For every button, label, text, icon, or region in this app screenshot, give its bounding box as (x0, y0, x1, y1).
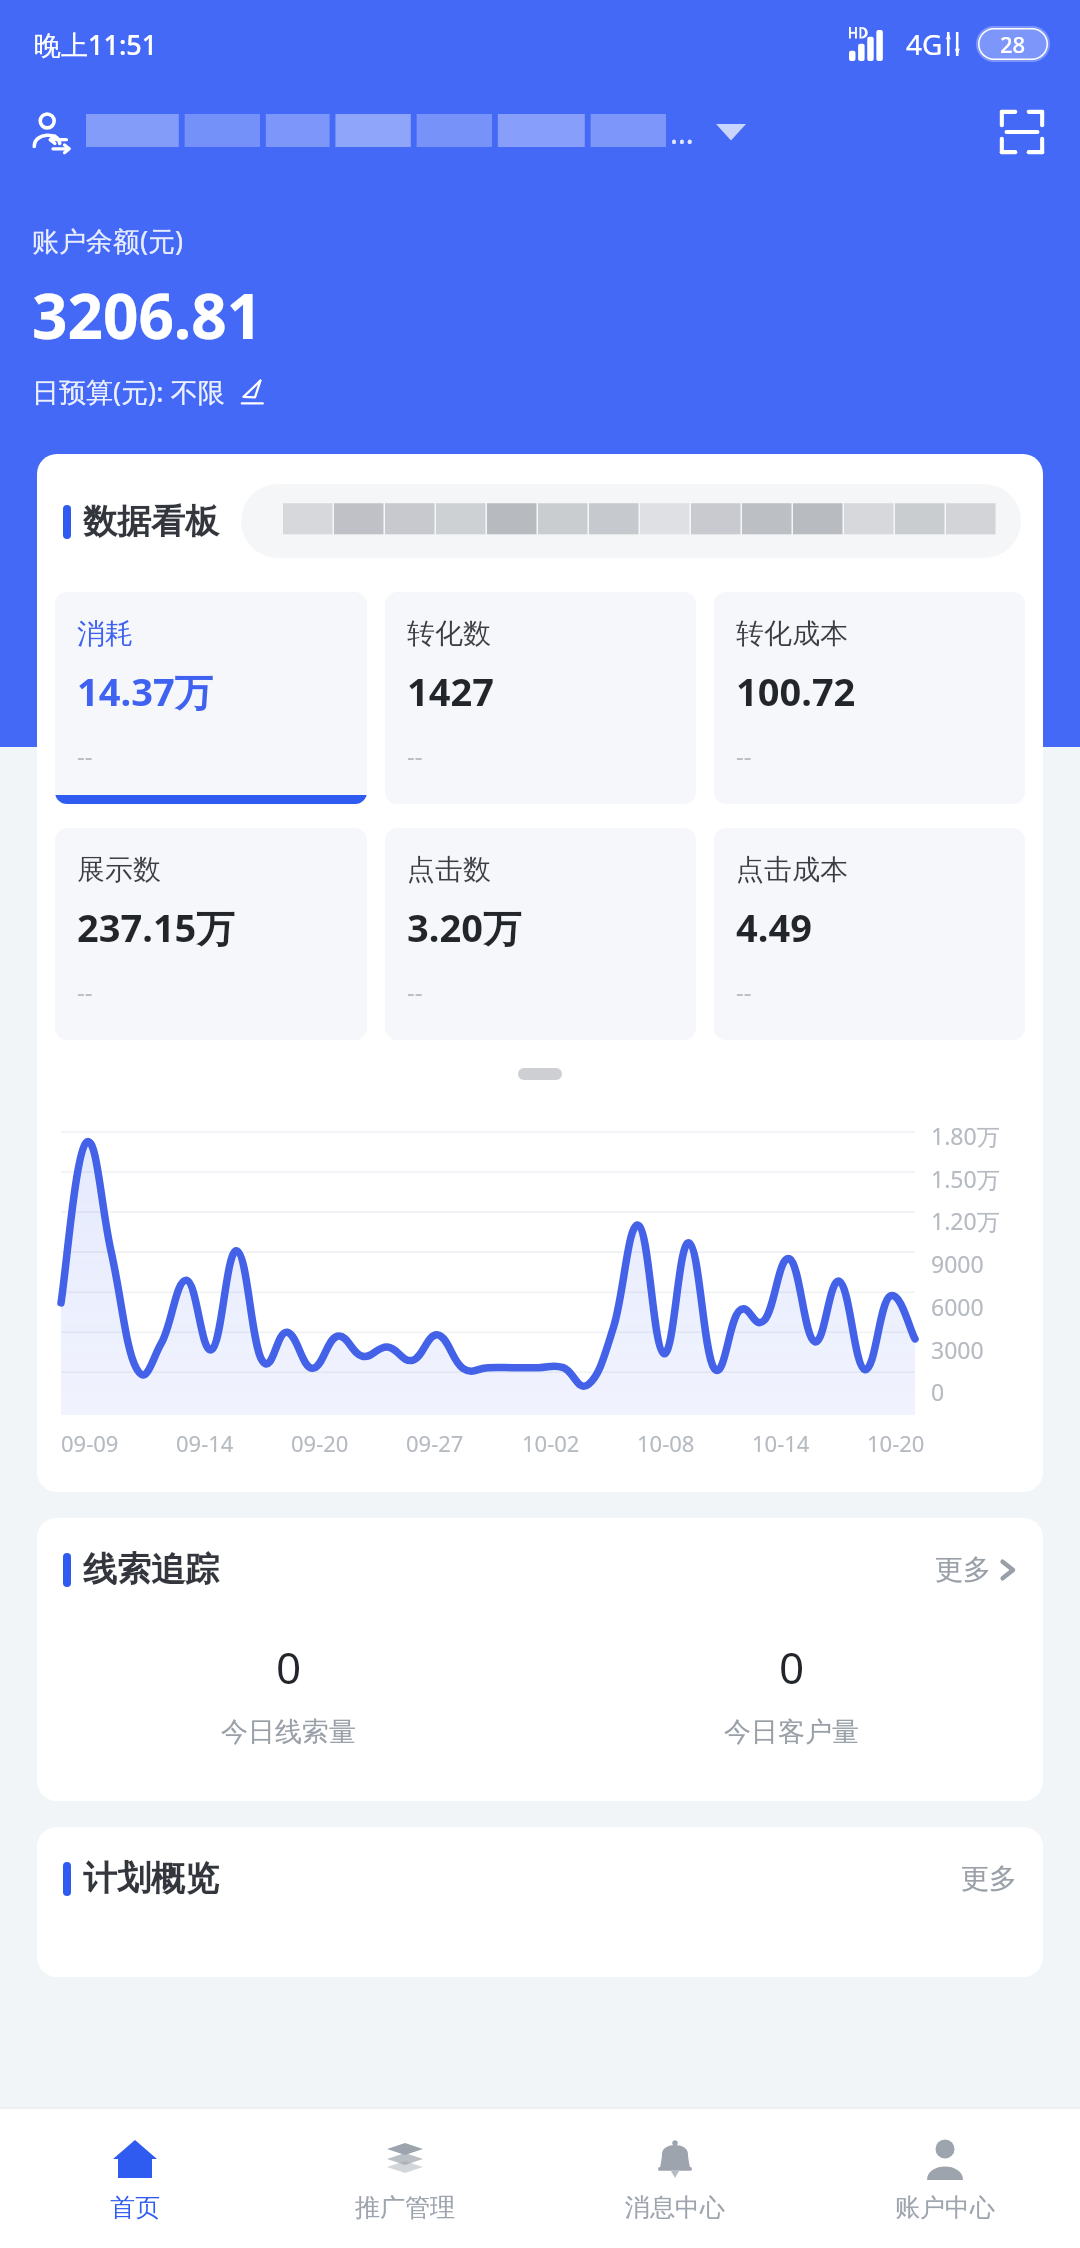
staticText: 更多 (961, 1861, 1017, 1896)
staticText: 日预算(元): 不限 (32, 373, 225, 410)
button[interactable]: 日预算(元): 不限 (32, 373, 267, 410)
staticText: 10-08 (637, 1428, 695, 1458)
staticText: 首页 (110, 2192, 160, 2223)
staticText: 09-09 (61, 1428, 119, 1458)
staticText: 100.72 (736, 665, 856, 717)
button[interactable]: 点击成本 (714, 828, 1025, 1040)
button[interactable]: 账户中心 (810, 2108, 1080, 2248)
staticText: 账户中心 (895, 2192, 995, 2223)
staticText: 4G (906, 25, 943, 63)
staticText: 晚上11:51 (34, 26, 158, 63)
button[interactable]: 转化成本 (714, 592, 1025, 804)
staticText: 1.80万 (931, 1120, 1000, 1151)
staticText: 展示数 (77, 852, 161, 887)
staticText: 今日线索量 (221, 1715, 356, 1749)
button[interactable]: 消息中心 (540, 2108, 810, 2248)
staticText: 账户余额(元) (32, 222, 184, 259)
staticText: 09-14 (176, 1428, 234, 1458)
staticText: 1.20万 (931, 1205, 1000, 1236)
button[interactable]: 转化数 (385, 592, 696, 804)
staticText: 28 (1000, 29, 1026, 59)
staticText: 线索追踪 (83, 1548, 219, 1591)
staticText: 9000 (931, 1248, 984, 1279)
staticText: 4.49 (736, 901, 812, 953)
staticText: 10-02 (522, 1428, 580, 1458)
staticText: 09-27 (406, 1428, 464, 1458)
staticText: 3000 (931, 1334, 984, 1365)
button[interactable]: 推广管理 (270, 2108, 540, 2248)
button[interactable]: 0 (37, 1637, 540, 1749)
staticText: 6000 (931, 1291, 984, 1322)
button[interactable]: 0 (540, 1637, 1043, 1749)
staticText: -- (407, 739, 423, 772)
staticText: 数据看板 (83, 500, 219, 543)
staticText: 0 (276, 1637, 302, 1697)
button[interactable]: 筛选条件 (241, 484, 1021, 558)
staticText: 点击成本 (736, 852, 848, 887)
staticText: 推广管理 (355, 2192, 455, 2223)
button[interactable]: 计划概览 (37, 1827, 1043, 1977)
button[interactable]: 消耗 (55, 592, 367, 804)
staticText: 计划概览 (83, 1857, 219, 1900)
other: 切换账户 (28, 108, 76, 156)
staticText: -- (736, 739, 752, 772)
button[interactable]: 扫一扫 (992, 102, 1052, 162)
staticText: 更多 (935, 1552, 991, 1587)
staticText: 10-20 (867, 1428, 925, 1458)
staticText: 10-14 (752, 1428, 810, 1458)
staticText: 点击数 (407, 852, 491, 887)
staticText: 1.50万 (931, 1163, 1000, 1194)
staticText: … (670, 112, 694, 153)
staticText: 237.15万 (77, 901, 235, 953)
button[interactable]: 更多 (935, 1552, 1017, 1587)
button[interactable]: 展示数 (55, 828, 367, 1040)
staticText: 14.37万 (77, 665, 213, 717)
staticText: -- (407, 975, 423, 1008)
staticText: 1427 (407, 665, 494, 717)
button[interactable]: 首页 (0, 2108, 270, 2248)
staticText: 消息中心 (625, 2192, 725, 2223)
other: 编辑日预算 (237, 377, 267, 407)
staticText: -- (736, 975, 752, 1008)
staticText: 消耗 (77, 616, 133, 651)
button[interactable]: 切换账户 (28, 107, 992, 157)
staticText: 3.20万 (407, 901, 521, 953)
staticText: 0 (931, 1376, 945, 1407)
button[interactable]: 展开 (518, 1068, 562, 1080)
staticText: 09-20 (291, 1428, 349, 1458)
staticText: 3206.81 (32, 273, 263, 357)
staticText: 转化数 (407, 616, 491, 651)
staticText: 转化成本 (736, 616, 848, 651)
staticText: 0 (779, 1637, 805, 1697)
staticText: 今日客户量 (724, 1715, 859, 1749)
staticText: -- (77, 975, 93, 1008)
staticText: -- (77, 739, 93, 772)
button[interactable]: 点击数 (385, 828, 696, 1040)
